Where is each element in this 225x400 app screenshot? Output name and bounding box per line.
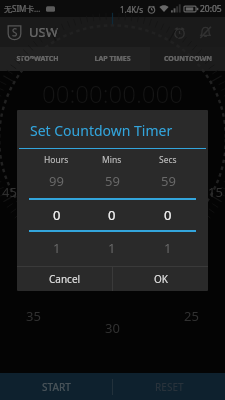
staticText: USW [29, 23, 58, 41]
staticText: 0 [164, 206, 172, 224]
button[interactable]: Alarm [166, 19, 192, 45]
button[interactable]: RESET [113, 373, 225, 400]
staticText: COUNTDOWN [164, 54, 212, 64]
staticText: 30 [105, 319, 120, 337]
staticText: Set Countdown Timer [30, 121, 173, 140]
staticText: 59 [105, 172, 120, 190]
staticText: Hours [44, 154, 69, 166]
button[interactable]: Cancel [17, 267, 112, 291]
staticText: 35 [26, 307, 41, 325]
staticText: 0 [53, 206, 61, 224]
staticText: 1 [53, 239, 61, 257]
staticText: 0 [108, 206, 116, 224]
staticText: 1 [108, 239, 116, 257]
staticText: Secs [159, 154, 177, 166]
button[interactable]: START [0, 373, 112, 400]
staticText: RESET [155, 380, 184, 394]
staticText: 45 [2, 183, 17, 201]
button[interactable]: COUNTDOWN [150, 47, 225, 71]
staticText: START [42, 380, 71, 394]
staticText: 1.4K/s [120, 4, 144, 15]
staticText: LAP TIMES [94, 54, 131, 64]
button[interactable]: OK [113, 267, 208, 291]
staticText: Cancel [49, 272, 81, 286]
staticText: 1 [164, 239, 172, 257]
staticText: 无SIM卡 [4, 3, 35, 14]
staticText: OK [154, 272, 168, 286]
button[interactable]: LAP TIMES [75, 47, 150, 71]
staticText: 15 [208, 183, 223, 201]
staticText: 99 [49, 172, 64, 190]
button[interactable]: STOPWATCH [0, 47, 75, 71]
staticText: Mins [102, 154, 122, 166]
button[interactable]: Mute [192, 19, 218, 45]
staticText: 00:00:00.000 [42, 77, 183, 110]
staticText: … [34, 3, 41, 14]
staticText: 20:05 [200, 3, 222, 15]
staticText: 25 [184, 307, 199, 325]
staticText: 59 [161, 172, 176, 190]
staticText: STOPWATCH [16, 54, 59, 64]
